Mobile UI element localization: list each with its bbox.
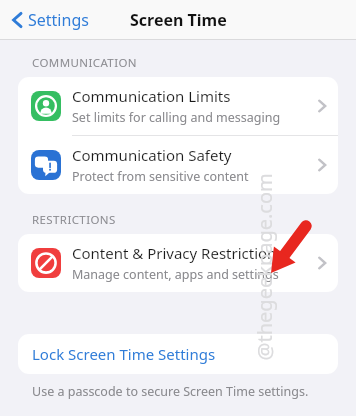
staticText: RESTRICTIONS: [32, 212, 116, 228]
button[interactable]: Communication Limits: [18, 77, 338, 135]
other: Communication Limits: [31, 91, 61, 121]
staticText: @thegeekpage.com: [250, 172, 277, 360]
staticText: Use a passcode to secure Screen Time set…: [32, 383, 309, 400]
button[interactable]: Lock Screen Time Settings: [18, 334, 338, 374]
staticText: Content & Privacy Restrictions: [72, 243, 284, 263]
staticText: Set limits for calling and messaging: [72, 109, 281, 126]
staticText: Screen Time: [130, 9, 227, 31]
staticText: Communication Safety: [72, 145, 232, 165]
other: Content & Privacy Restrictions: [31, 248, 61, 278]
button[interactable]: Communication Safety: [18, 136, 338, 194]
staticText: Manage content, apps and settings: [72, 266, 279, 283]
staticText: Communication Limits: [72, 86, 231, 106]
staticText: Settings: [28, 9, 89, 31]
staticText: COMMUNICATION: [32, 55, 137, 71]
button[interactable]: Settings: [8, 5, 93, 35]
button[interactable]: Content & Privacy Restrictions: [18, 234, 338, 292]
staticText: Protect from sensitive content: [72, 168, 249, 185]
other: Communication Safety: [31, 150, 61, 180]
staticText: Lock Screen Time Settings: [32, 344, 216, 364]
